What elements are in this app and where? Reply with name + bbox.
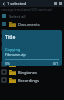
button[interactable]: Ringtones xyxy=(0,68,64,76)
staticText: Podcasts xyxy=(18,62,35,67)
button[interactable]: Back xyxy=(1,1,6,6)
button[interactable]: Download xyxy=(0,28,64,36)
button[interactable]: Pictures xyxy=(0,52,64,60)
button[interactable]: Select all xyxy=(0,12,64,20)
staticText: Copying xyxy=(5,47,21,52)
staticText: Select all xyxy=(9,14,26,19)
button[interactable]: Documents xyxy=(0,20,64,28)
button[interactable]: Music xyxy=(0,44,64,52)
staticText: storage/emulated/0/Download xyxy=(1,7,52,12)
button[interactable]: Podcasts xyxy=(0,60,64,68)
button[interactable]: Recordings xyxy=(0,76,64,84)
staticText: 0/1 xyxy=(53,61,59,66)
staticText: 1 selected xyxy=(7,1,26,6)
button[interactable]: Movies xyxy=(0,36,64,44)
staticText: Filename.zip xyxy=(5,52,26,57)
staticText: Recordings xyxy=(18,78,39,83)
staticText: Documents xyxy=(18,22,40,27)
staticText: Ringtones xyxy=(18,70,37,75)
staticText: Music xyxy=(18,46,29,51)
staticText: Title xyxy=(5,34,16,41)
staticText: Pictures xyxy=(18,54,34,59)
staticText: 0% xyxy=(5,61,10,66)
